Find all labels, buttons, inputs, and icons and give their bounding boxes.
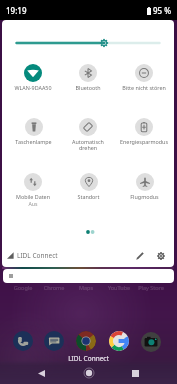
button[interactable]: WLAN-9DAA50 — [6, 64, 60, 100]
button[interactable]: Zurück — [30, 362, 52, 384]
button[interactable]: Übersicht — [124, 362, 146, 384]
button[interactable]: Standort — [61, 173, 115, 209]
staticText: LIDL Connect — [17, 251, 58, 260]
staticText: Bitte nicht stören — [122, 84, 166, 91]
button[interactable]: Flugmodus — [117, 173, 171, 209]
button[interactable]: Einstellungen — [153, 248, 169, 264]
staticText: 19:19 — [6, 5, 27, 16]
staticText: Taschenlampe — [15, 138, 52, 145]
button[interactable]: Taschenlampe — [6, 118, 60, 154]
staticText: LIDL Connect — [0, 354, 177, 363]
staticText: Mobile Daten — [16, 193, 50, 200]
button[interactable]: Kamera — [141, 332, 161, 352]
button[interactable]: Nachrichten — [44, 331, 64, 351]
button[interactable]: Mobile Daten — [6, 173, 60, 209]
staticText: Standort — [77, 193, 100, 200]
staticText: Energiesparmodus — [120, 138, 168, 145]
staticText: YouTube — [103, 284, 135, 291]
staticText: Flugmodus — [130, 193, 159, 200]
staticText: Bluetooth — [75, 84, 101, 91]
button[interactable]: Energiesparmodus — [117, 118, 171, 154]
button[interactable]: Google — [109, 331, 129, 351]
staticText: Chrome — [38, 284, 70, 291]
button[interactable]: Telefon — [13, 331, 33, 351]
button[interactable]: Chrome — [76, 331, 96, 351]
staticText: Play Store — [135, 284, 167, 291]
staticText: WLAN-9DAA50 — [14, 84, 52, 91]
staticText: Aus — [28, 200, 38, 207]
button[interactable]: Bitte nicht stören — [117, 64, 171, 100]
button[interactable]: Bluetooth — [61, 64, 115, 100]
staticText: 95 % — [153, 5, 172, 16]
button[interactable]: Automatisch drehen — [61, 118, 115, 154]
staticText: Maps — [70, 284, 102, 291]
staticText: Google — [7, 284, 39, 291]
staticText: Automatisch drehen — [72, 138, 104, 152]
button[interactable]: Startbildschirm — [78, 362, 100, 384]
button[interactable]: Bearbeiten — [132, 248, 148, 264]
button[interactable]: Helligkeit — [15, 38, 161, 48]
